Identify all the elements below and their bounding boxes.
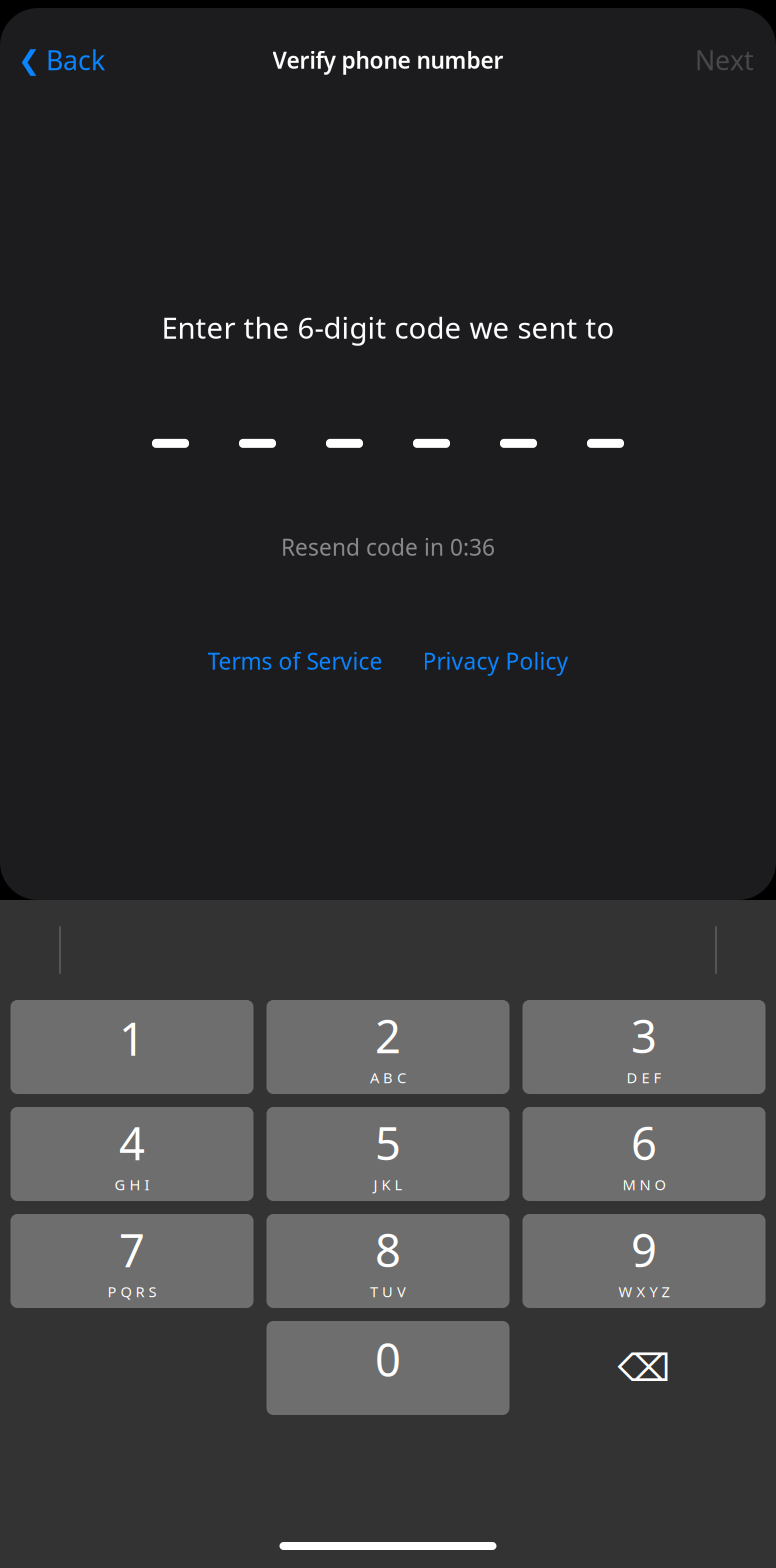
staticText: Back bbox=[46, 42, 105, 78]
button[interactable]: 8 bbox=[266, 1214, 509, 1308]
staticText: 7 bbox=[119, 1220, 145, 1280]
button[interactable]: ❮ bbox=[0, 32, 123, 88]
button[interactable]: Terms of Service bbox=[207, 640, 382, 682]
staticText: 4 bbox=[119, 1113, 145, 1173]
staticText: W X Y Z bbox=[618, 1282, 669, 1301]
staticText: Next bbox=[695, 42, 754, 78]
button[interactable]: Delete bbox=[522, 1321, 765, 1415]
button[interactable]: 1 bbox=[10, 1000, 253, 1094]
staticText: Privacy Policy bbox=[422, 646, 568, 676]
staticText: 8 bbox=[375, 1220, 401, 1280]
staticText: Resend code in 0:36 bbox=[281, 532, 495, 562]
button[interactable]: Next bbox=[673, 32, 776, 88]
staticText: Enter the 6-digit code we sent to bbox=[161, 308, 614, 347]
button[interactable]: 4 bbox=[10, 1107, 253, 1201]
button[interactable]: Privacy Policy bbox=[422, 640, 568, 682]
button[interactable]: 2 bbox=[266, 1000, 509, 1094]
staticText: 1 bbox=[119, 1008, 145, 1068]
staticText: 3 bbox=[631, 1006, 657, 1066]
staticText: Terms of Service bbox=[207, 646, 382, 676]
staticText: 0 bbox=[375, 1329, 401, 1389]
button[interactable]: 3 bbox=[522, 1000, 765, 1094]
staticText: D E F bbox=[626, 1068, 661, 1087]
button[interactable]: 9 bbox=[522, 1214, 765, 1308]
staticText: T U V bbox=[370, 1282, 406, 1301]
staticText: G H I bbox=[114, 1175, 149, 1194]
staticText: J K L bbox=[373, 1175, 402, 1194]
staticText: P Q R S bbox=[107, 1282, 156, 1301]
button[interactable]: 6 bbox=[522, 1107, 765, 1201]
staticText: Verify phone number bbox=[272, 45, 503, 75]
button[interactable]: 7 bbox=[10, 1214, 253, 1308]
button[interactable]: 5 bbox=[266, 1107, 509, 1201]
staticText: 2 bbox=[375, 1006, 401, 1066]
staticText: 9 bbox=[631, 1220, 657, 1280]
staticText: ❮ bbox=[18, 45, 40, 75]
staticText: A B C bbox=[370, 1068, 406, 1087]
button[interactable]: 0 bbox=[266, 1321, 509, 1415]
staticText: ⌫ bbox=[617, 1347, 670, 1389]
staticText: 5 bbox=[375, 1113, 401, 1173]
staticText: 6 bbox=[631, 1113, 657, 1173]
staticText: M N O bbox=[622, 1175, 665, 1194]
